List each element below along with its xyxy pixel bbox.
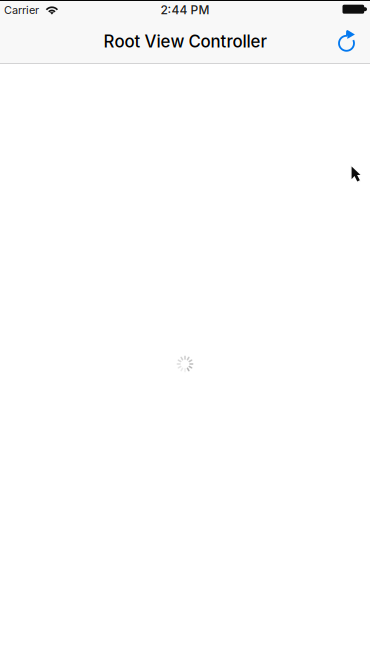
staticText: Root View Controller: [103, 31, 266, 52]
staticText: Carrier: [4, 3, 39, 17]
staticText: 2:44 PM: [160, 3, 209, 17]
button[interactable]: Refresh: [325, 19, 369, 63]
